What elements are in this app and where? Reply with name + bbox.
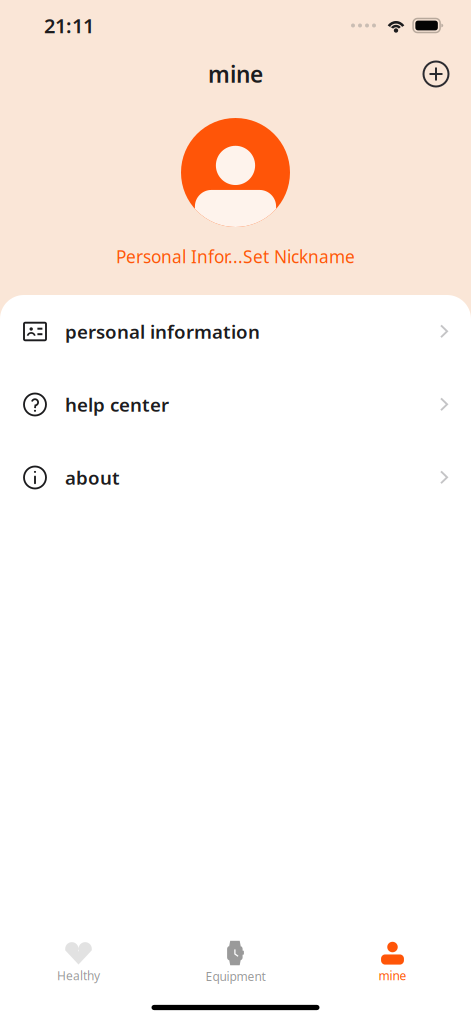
staticText: personal information [65,319,260,344]
button[interactable]: Healthy [0,941,157,983]
button[interactable]: Add [421,59,451,89]
staticText: Healthy [57,967,100,983]
staticText: Equipment [205,968,265,984]
staticText: mine [208,59,263,89]
staticText: Personal Infor...Set Nickname [116,245,355,268]
button[interactable]: Personal Infor...Set Nickname [116,245,355,268]
button[interactable]: about [0,441,471,514]
button[interactable]: mine [314,941,471,983]
staticText: about [65,465,120,490]
staticText: 21:11 [44,12,94,39]
button[interactable]: Equipment [157,941,314,984]
button[interactable]: help center [0,368,471,441]
button[interactable]: personal information [0,295,471,368]
staticText: mine [378,968,406,983]
staticText: help center [65,392,169,417]
